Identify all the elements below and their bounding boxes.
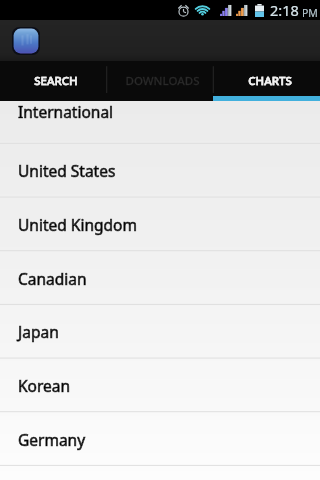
staticText: DOWNLOADS [125,73,200,89]
button[interactable]: Canadian [0,251,320,305]
staticText: Korean [18,375,71,396]
button[interactable]: CHARTS [213,61,320,101]
button[interactable]: United Kingdom [0,197,320,251]
staticText: United States [18,160,116,181]
staticText: CHARTS [248,73,292,89]
button[interactable]: DOWNLOADS [106,61,213,101]
staticText: Canadian [18,268,87,289]
staticText: 2:18 [270,0,299,20]
staticText: Japan [18,321,59,342]
staticText: United Kingdom [18,214,137,235]
staticText: Canadian [18,268,87,289]
button[interactable]: App icon, navigate up [12,27,40,55]
staticText: United Kingdom [18,214,137,235]
staticText: CHARTS [248,73,292,89]
staticText: International [18,101,114,122]
button[interactable]: Japan [0,304,320,358]
button[interactable]: Korean [0,358,320,412]
staticText: Japan [18,321,59,342]
staticText: Germany [18,429,86,450]
staticText: Germany [18,429,86,450]
button[interactable]: SEARCH [0,61,106,101]
staticText: United States [18,160,116,181]
button[interactable]: United States [0,143,320,197]
staticText: Korean [18,375,71,396]
staticText: PM [302,6,318,20]
button[interactable]: Germany [0,412,320,466]
staticText: International [18,101,114,122]
staticText: SEARCH [34,73,78,89]
button[interactable]: International [0,101,320,143]
staticText: DOWNLOADS [125,73,200,89]
staticText: SEARCH [34,73,78,89]
